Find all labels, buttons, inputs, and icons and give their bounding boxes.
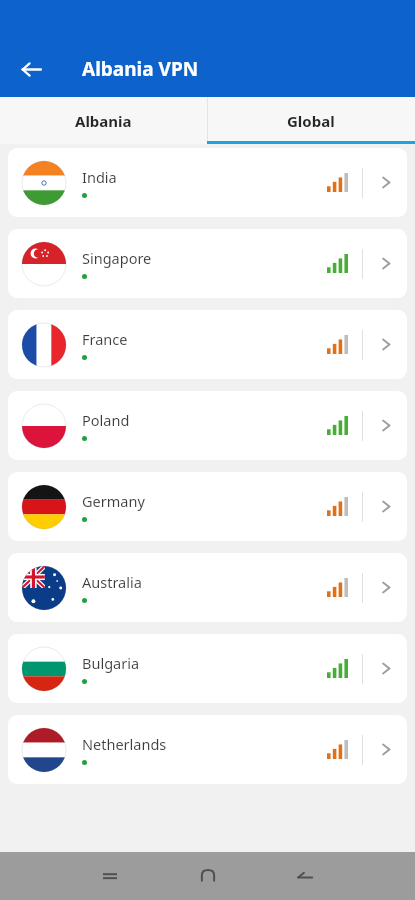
button[interactable]: Bulgaria xyxy=(8,634,407,703)
staticText: Netherlands xyxy=(82,734,167,754)
button[interactable]: Netherlands xyxy=(8,715,407,784)
staticText: Australia xyxy=(82,572,142,592)
button[interactable]: France xyxy=(8,310,407,379)
button[interactable]: Back xyxy=(13,51,49,87)
staticText: Albania VPN xyxy=(82,56,199,82)
staticText: Global xyxy=(287,111,335,131)
staticText: Germany xyxy=(82,491,145,511)
button[interactable]: Home xyxy=(188,856,228,896)
button[interactable]: Back xyxy=(285,856,325,896)
button[interactable]: Australia xyxy=(8,553,407,622)
button[interactable]: Recents xyxy=(90,856,130,896)
button[interactable]: India xyxy=(8,148,407,217)
staticText: Bulgaria xyxy=(82,653,140,673)
button[interactable]: Global xyxy=(207,97,415,144)
staticText: India xyxy=(82,167,117,187)
staticText: France xyxy=(82,329,128,349)
button[interactable]: Germany xyxy=(8,472,407,541)
button[interactable]: Singapore xyxy=(8,229,407,298)
staticText: Singapore xyxy=(82,248,152,268)
staticText: Albania xyxy=(75,111,132,131)
button[interactable]: Poland xyxy=(8,391,407,460)
staticText: Poland xyxy=(82,410,130,430)
button[interactable]: Albania xyxy=(0,97,207,144)
